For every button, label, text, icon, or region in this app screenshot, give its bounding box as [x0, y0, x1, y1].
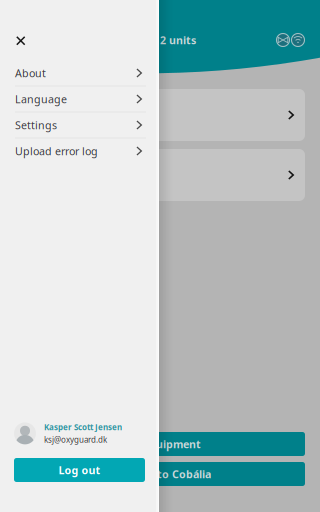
button[interactable]: Transfer data	[276, 33, 290, 47]
button[interactable]: Upload error log	[0, 138, 159, 164]
staticText: Upload error log	[15, 144, 98, 158]
button[interactable]: Language	[0, 86, 159, 112]
staticText: Add equipment	[119, 437, 201, 451]
staticText: Kasper Scott Jensen	[44, 422, 122, 432]
button[interactable]: Settings	[0, 112, 159, 138]
staticText: About	[15, 66, 46, 80]
staticText: ksj@oxyguard.dk	[44, 434, 107, 445]
button[interactable]: Connect to Cobália	[15, 462, 305, 486]
button[interactable]	[15, 149, 305, 201]
button[interactable]: Log out	[14, 458, 145, 482]
button[interactable]: Add equipment	[15, 432, 305, 456]
staticText: Cobália - 2 units	[112, 33, 196, 47]
staticText: Connect to Cobália	[109, 467, 211, 481]
staticText: Log out	[58, 463, 100, 477]
button[interactable]: About	[0, 60, 159, 86]
button[interactable]: Connection status	[291, 33, 305, 47]
button[interactable]	[15, 89, 305, 141]
button[interactable]: Kasper Scott Jensen	[0, 422, 159, 445]
button[interactable]: Close menu	[10, 30, 31, 51]
staticText: Language	[15, 92, 67, 106]
staticText: Settings	[15, 118, 57, 132]
